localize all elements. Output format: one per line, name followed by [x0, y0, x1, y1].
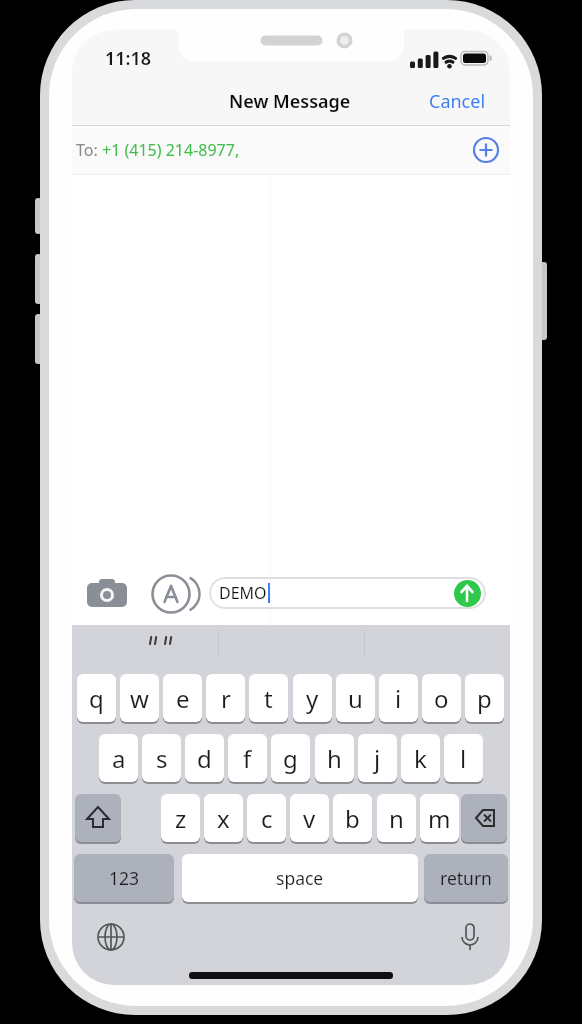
- button[interactable]: p: [465, 674, 504, 722]
- staticText: t: [264, 682, 273, 715]
- staticText: f: [243, 742, 252, 775]
- staticText: return: [440, 866, 492, 890]
- staticText: n: [389, 802, 404, 835]
- staticText: a: [112, 742, 126, 775]
- staticText: q: [89, 682, 104, 715]
- staticText: y: [306, 682, 319, 715]
- staticText: i: [395, 682, 402, 715]
- button[interactable]: space: [182, 854, 418, 902]
- button[interactable]: v: [290, 794, 329, 842]
- button[interactable]: z: [161, 794, 200, 842]
- button[interactable]: i: [379, 674, 418, 722]
- button[interactable]: n: [377, 794, 416, 842]
- staticText: w: [130, 682, 149, 715]
- staticText: h: [327, 742, 342, 775]
- staticText: To:: [76, 139, 102, 161]
- staticText: DEMO: [219, 582, 267, 604]
- staticText: z: [175, 802, 187, 835]
- staticText: v: [303, 802, 316, 835]
- staticText: Cancel: [429, 89, 486, 114]
- button[interactable]: Cancel: [417, 87, 497, 116]
- staticText: d: [197, 742, 212, 775]
- staticText: x: [217, 802, 230, 835]
- button[interactable]: g: [271, 734, 310, 782]
- button[interactable]: c: [247, 794, 286, 842]
- staticText: e: [176, 682, 190, 715]
- button[interactable]: o: [422, 674, 461, 722]
- button[interactable]: r: [206, 674, 245, 722]
- button[interactable]: u: [336, 674, 375, 722]
- button[interactable]: m: [420, 794, 459, 842]
- button[interactable]: t: [249, 674, 288, 722]
- button[interactable]: w: [120, 674, 159, 722]
- staticText: b: [345, 802, 360, 835]
- button[interactable]: l: [444, 734, 483, 782]
- staticText: r: [221, 682, 231, 715]
- button[interactable]: [454, 580, 481, 607]
- staticText: c: [261, 802, 273, 835]
- staticText: j: [374, 742, 381, 775]
- button[interactable]: f: [228, 734, 267, 782]
- staticText: 123: [109, 866, 140, 890]
- staticText: p: [477, 682, 492, 715]
- staticText: g: [283, 742, 298, 775]
- staticText: New Message: [229, 89, 351, 114]
- button[interactable]: a: [99, 734, 138, 782]
- button[interactable]: 123: [74, 854, 174, 902]
- staticText: space: [276, 866, 324, 890]
- staticText: s: [156, 742, 168, 775]
- staticText: 11:18: [105, 46, 152, 71]
- button[interactable]: j: [358, 734, 397, 782]
- staticText: +1 (415) 214-8977,: [102, 139, 240, 161]
- button[interactable]: [75, 794, 121, 842]
- button[interactable]: q: [77, 674, 116, 722]
- staticText: k: [414, 742, 427, 775]
- staticText: o: [434, 682, 449, 715]
- button[interactable]: d: [185, 734, 224, 782]
- button[interactable]: s: [142, 734, 181, 782]
- button[interactable]: return: [424, 854, 508, 902]
- button[interactable]: h: [315, 734, 354, 782]
- button[interactable]: x: [204, 794, 243, 842]
- button[interactable]: k: [401, 734, 440, 782]
- staticText: m: [428, 802, 451, 835]
- button[interactable]: [209, 577, 486, 609]
- button[interactable]: y: [293, 674, 332, 722]
- staticText: l: [460, 742, 467, 775]
- button[interactable]: [461, 794, 507, 842]
- staticText: u: [348, 682, 363, 715]
- button[interactable]: e: [163, 674, 202, 722]
- button[interactable]: b: [333, 794, 372, 842]
